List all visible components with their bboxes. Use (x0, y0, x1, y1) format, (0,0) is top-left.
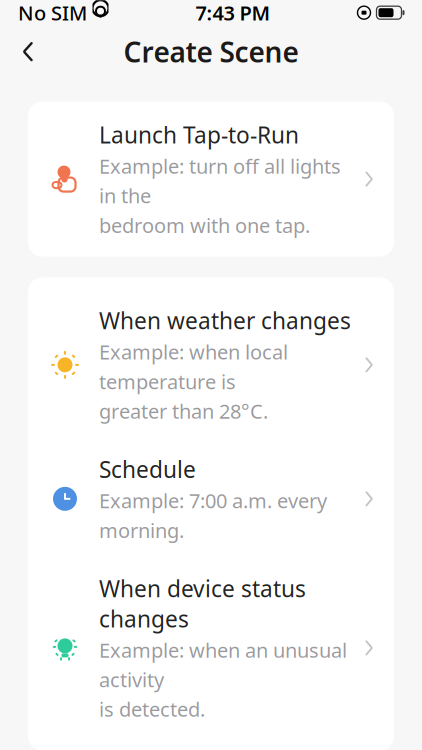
staticText: When device status changes (99, 573, 306, 634)
button[interactable]: Schedule (28, 438, 394, 559)
staticText: Create Scene (123, 33, 298, 70)
staticText: Example: when local temperature is great… (99, 339, 288, 424)
staticText: Schedule (99, 454, 196, 484)
staticText: Example: 7:00 a.m. every morning. (99, 487, 327, 543)
staticText: 7:43 PM (195, 0, 270, 26)
staticText: When weather changes (99, 305, 351, 335)
staticText: Example: turn off all lights in the bedr… (99, 153, 341, 238)
staticText: Launch Tap-to-Run (99, 120, 299, 150)
button[interactable]: Back (6, 30, 50, 74)
staticText: Example: when an unusual activity is det… (99, 637, 347, 722)
staticText: No SIM (18, 0, 87, 26)
button[interactable]: When weather changes (28, 277, 394, 438)
button[interactable]: When device status changes (28, 559, 394, 750)
button[interactable]: Launch Tap-to-Run (28, 102, 394, 256)
